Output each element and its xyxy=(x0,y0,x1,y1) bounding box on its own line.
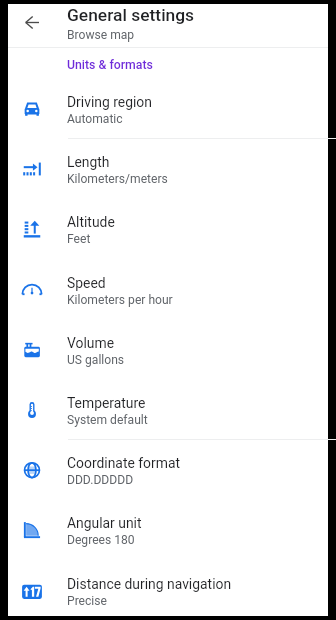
staticText: DDD.DDDDD xyxy=(67,473,134,487)
staticText: Driving region xyxy=(67,94,152,110)
button[interactable]: Driving region xyxy=(8,79,328,139)
staticText: Distance during navigation xyxy=(67,576,232,592)
button[interactable]: Altitude xyxy=(8,199,328,259)
button[interactable]: Angular unit xyxy=(8,500,328,560)
button[interactable]: Length xyxy=(8,139,328,199)
staticText: Speed xyxy=(67,275,106,291)
staticText: Units & formats xyxy=(67,58,153,72)
staticText: Degrees 180 xyxy=(67,533,135,547)
staticText: Precise xyxy=(67,594,107,608)
staticText: General settings xyxy=(67,5,195,25)
button[interactable]: Temperature xyxy=(8,380,328,440)
staticText: Angular unit xyxy=(67,515,142,531)
button[interactable]: Distance during navigation xyxy=(8,561,328,620)
staticText: Kilometers/meters xyxy=(67,172,168,186)
staticText: Coordinate format xyxy=(67,455,180,471)
button[interactable]: Volume xyxy=(8,320,328,380)
staticText: Temperature xyxy=(67,395,146,411)
staticText: System default xyxy=(67,413,148,427)
staticText: Browse map xyxy=(67,28,135,42)
button[interactable]: Back xyxy=(13,4,50,41)
staticText: Kilometers per hour xyxy=(67,293,173,307)
button[interactable]: Coordinate format xyxy=(8,440,328,500)
button[interactable]: Speed xyxy=(8,260,328,320)
staticText: US gallons xyxy=(67,353,125,367)
staticText: Feet xyxy=(67,232,91,246)
staticText: Automatic xyxy=(67,112,123,126)
staticText: Length xyxy=(67,154,110,170)
staticText: Volume xyxy=(67,335,115,351)
staticText: Altitude xyxy=(67,214,115,230)
